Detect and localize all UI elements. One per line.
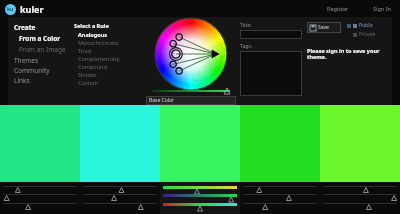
staticText: Compound (78, 63, 107, 70)
staticText: Themes (14, 56, 39, 65)
button[interactable]: Color slider (163, 186, 237, 194)
button[interactable]: Create (14, 23, 36, 32)
button[interactable]: Complementary (74, 54, 120, 62)
button[interactable]: Color slider (323, 194, 397, 202)
button[interactable]: Color slider (243, 203, 317, 211)
staticText: Base Color (149, 97, 175, 104)
staticText: Public (359, 22, 374, 29)
staticText: Monochromatic (78, 39, 119, 46)
button[interactable]: Color slider (3, 194, 77, 202)
button[interactable]: Color slider (243, 194, 317, 202)
button[interactable]: Themes (14, 56, 39, 65)
button[interactable]: Color slider (3, 186, 77, 194)
staticText: Select a Rule (74, 22, 109, 29)
button[interactable]: Color slider (163, 203, 237, 211)
button[interactable]: Shades (74, 70, 97, 78)
button[interactable]: Color slider (83, 186, 157, 194)
staticText: Triad (78, 47, 91, 54)
staticText: kuler (20, 3, 44, 15)
button[interactable]: Color slider (323, 203, 397, 211)
button[interactable]: Monochromatic (74, 38, 119, 46)
staticText: Save (318, 24, 329, 31)
button[interactable]: Color slider (243, 186, 317, 194)
staticText: Shades (78, 71, 97, 78)
button[interactable]: Color slider (323, 186, 397, 194)
staticText: Private (359, 31, 376, 38)
button[interactable] (240, 51, 302, 96)
staticText: Please sign in to save your theme. (307, 47, 388, 61)
button[interactable]: Color slider (83, 203, 157, 211)
staticText: Register (327, 5, 349, 12)
button[interactable]: Register (324, 5, 352, 12)
staticText: From a Color (19, 34, 61, 43)
button[interactable] (240, 30, 302, 39)
button[interactable]: Compound (74, 62, 107, 70)
staticText: ku (7, 6, 14, 13)
button[interactable]: Color slider (163, 194, 237, 202)
button[interactable]: Links (14, 76, 30, 85)
button[interactable]: Color slider (83, 194, 157, 202)
button[interactable]: Custom (74, 78, 98, 86)
button[interactable]: Base Color (146, 96, 236, 105)
staticText: Links (14, 76, 30, 85)
button[interactable]: Color slider (3, 203, 77, 211)
button[interactable]: Private (347, 31, 376, 38)
staticText: Analogous (78, 31, 108, 38)
button[interactable]: Sign In (370, 5, 394, 12)
staticText: Title: (240, 22, 252, 29)
staticText: From an Image (19, 45, 66, 54)
button[interactable]: Triad (74, 46, 91, 54)
button[interactable]: From an Image (14, 45, 66, 54)
button[interactable]: Save (307, 22, 341, 33)
staticText: Tags: (240, 43, 252, 50)
staticText: Complementary (78, 55, 120, 62)
button[interactable]: ku (5, 3, 44, 15)
button[interactable]: Public (347, 22, 374, 29)
button[interactable]: From a Color (14, 34, 61, 43)
button[interactable]: Color wheel (155, 18, 227, 90)
staticText: Community (14, 66, 50, 75)
staticText: Custom (78, 79, 98, 86)
staticText: Create (14, 23, 36, 32)
button[interactable]: Community (14, 66, 50, 75)
staticText: Sign In (373, 5, 391, 12)
button[interactable]: Analogous (74, 31, 108, 38)
